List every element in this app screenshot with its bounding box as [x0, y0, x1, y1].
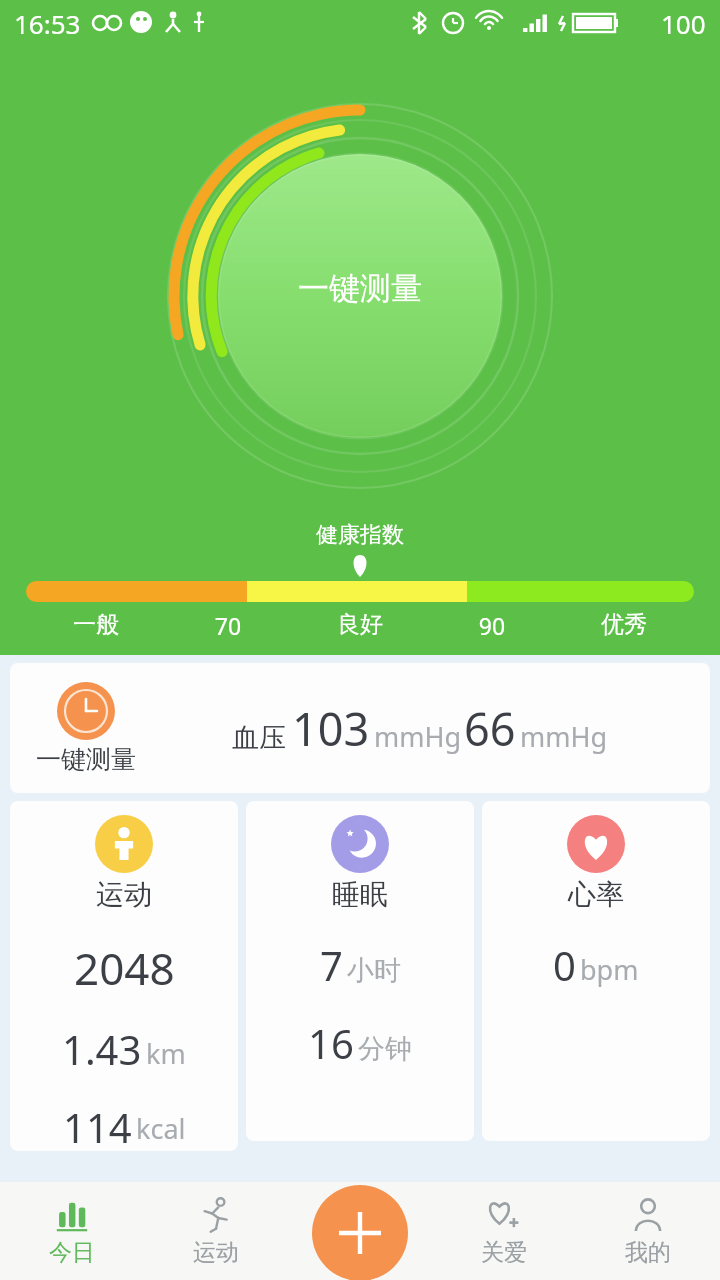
staticText: 优秀 [558, 610, 690, 639]
staticText: 100 [661, 6, 706, 41]
staticText: 66 [464, 698, 516, 759]
staticText: 运动 [193, 1238, 239, 1267]
staticText: km [146, 1035, 186, 1072]
staticText: 睡眠 [332, 877, 388, 912]
staticText: 分钟 [358, 1032, 412, 1066]
button[interactable]: 一键测量 [10, 663, 710, 793]
staticText: 90 [426, 610, 558, 641]
staticText: 0 [553, 938, 576, 992]
staticText: mmHg [374, 718, 462, 755]
staticText: 7 [320, 938, 343, 992]
staticText: 103 [292, 698, 370, 759]
staticText: 70 [162, 610, 294, 641]
staticText: 良好 [294, 610, 426, 639]
button[interactable]: 一键测量 [298, 269, 422, 308]
button[interactable]: 今日 [0, 1196, 144, 1267]
staticText: 一键测量 [36, 744, 136, 775]
button[interactable]: Add [312, 1185, 408, 1280]
staticText: 一般 [30, 610, 162, 639]
staticText: 小时 [347, 954, 401, 988]
button[interactable]: 运动 [144, 1196, 288, 1267]
staticText: 2048 [74, 938, 175, 998]
button[interactable]: 关爱 [432, 1196, 576, 1267]
button[interactable]: 我的 [576, 1196, 720, 1267]
staticText: 16:53 [14, 6, 81, 41]
staticText: 心率 [568, 877, 624, 912]
staticText: 114 [63, 1100, 132, 1151]
button[interactable]: 睡眠 [246, 801, 474, 1141]
staticText: 我的 [625, 1238, 671, 1267]
staticText: kcal [136, 1110, 186, 1147]
staticText: 运动 [96, 877, 152, 912]
staticText: mmHg [520, 718, 608, 755]
staticText: 今日 [49, 1238, 95, 1267]
staticText: 关爱 [481, 1238, 527, 1267]
staticText: 1.43 [62, 1022, 142, 1076]
staticText: 健康指数 [316, 521, 404, 549]
staticText: 16 [308, 1016, 354, 1070]
button[interactable]: 心率 [482, 801, 710, 1141]
button[interactable]: 运动 [10, 801, 238, 1151]
staticText: 血压 [232, 721, 286, 755]
staticText: bpm [580, 951, 639, 988]
